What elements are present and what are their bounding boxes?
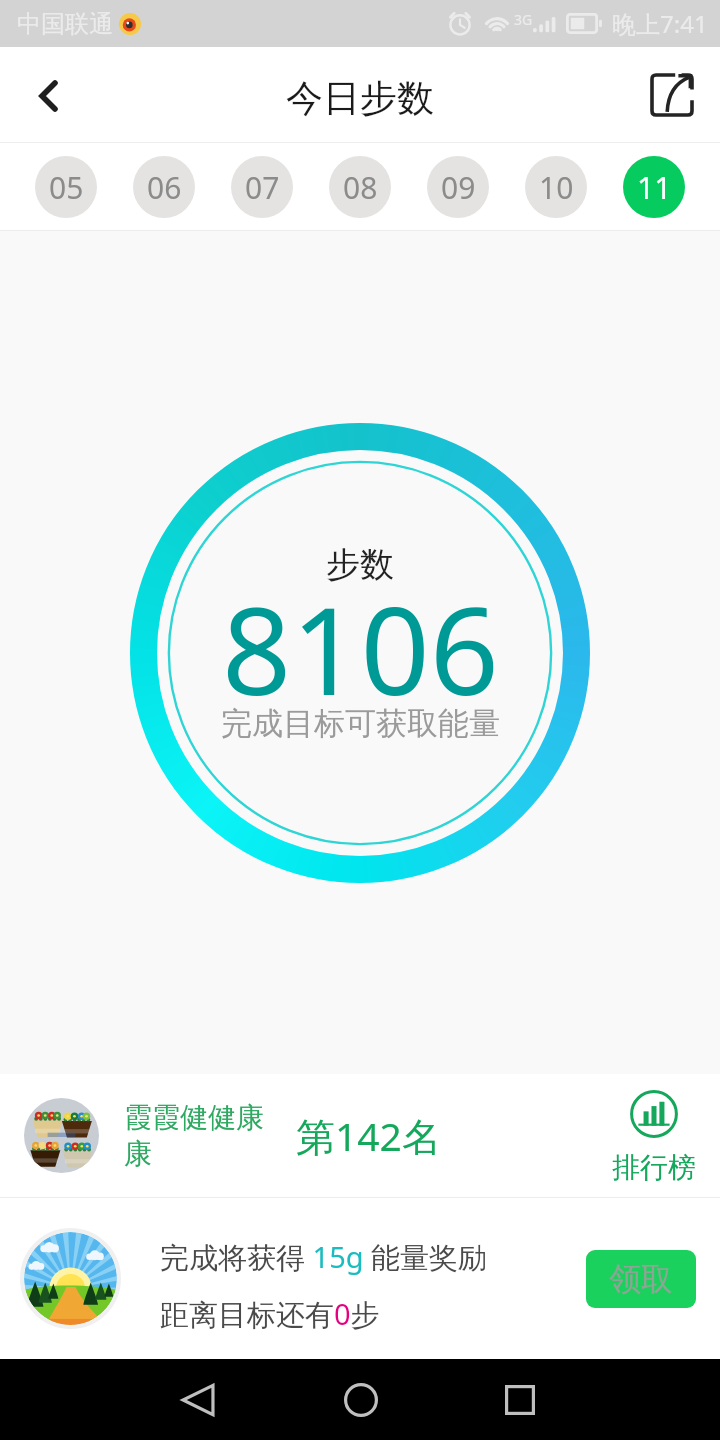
staticText: 11 [637,167,672,208]
button[interactable]: 08 [329,156,391,218]
button[interactable]: Share [624,47,720,143]
staticText: 中国联通 [17,9,113,39]
button[interactable]: 11 [623,156,685,218]
button[interactable]: 09 [427,156,489,218]
staticText: 07 [245,167,280,208]
button[interactable]: 07 [231,156,293,218]
button[interactable]: Home [279,1359,442,1440]
staticText: 06 [147,167,182,208]
button[interactable]: 10 [525,156,587,218]
button[interactable]: 霞霞健健康康 [0,1074,720,1197]
staticText: 霞霞健健康康 [124,1100,274,1171]
staticText: 09 [441,167,476,208]
staticText: 排行榜 [612,1150,696,1185]
button[interactable]: 领取 [586,1250,696,1308]
staticText: 第142名 [296,1109,441,1162]
button[interactable]: 06 [133,156,195,218]
staticText: 完成将获得 15g 能量奖励 [160,1237,488,1277]
staticText: 10 [539,167,574,208]
button[interactable]: Back [116,1359,279,1440]
staticText: 8106 [222,566,499,731]
staticText: 步数 [326,543,394,586]
staticText: 今日步数 [286,75,434,122]
staticText: 完成目标可获取能量 [221,704,500,743]
button[interactable]: 05 [35,156,97,218]
staticText: 距离目标还有0步 [160,1294,380,1334]
staticText: 晚上7:41 [612,7,708,40]
button[interactable]: Recent apps [442,1359,605,1440]
staticText: 领取 [609,1259,673,1299]
staticText: 08 [343,167,378,208]
button[interactable]: Back [0,47,94,143]
staticText: 05 [49,167,84,208]
staticText: 3G [514,10,533,29]
button[interactable]: 排行榜 [612,1090,696,1185]
